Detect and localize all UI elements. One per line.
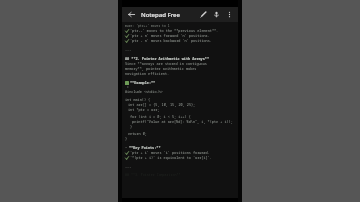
staticText: for (int i = 0; i < 5; i++) { xyxy=(130,114,191,119)
staticText: • xyxy=(125,145,128,150)
staticText: memory**, pointer arithmetic makes xyxy=(125,66,197,71)
staticText: --- xyxy=(125,47,132,52)
staticText: } xyxy=(130,124,133,129)
staticText: 'ptr + i' moves 'i' positions forward. xyxy=(130,150,210,155)
staticText: **Example:** xyxy=(130,80,156,85)
staticText: 'ptr--' moves to the **previous element*… xyxy=(130,28,219,33)
button[interactable]: Back xyxy=(125,8,138,21)
staticText: #include <stdio.h> xyxy=(125,89,163,94)
staticText: int main() { xyxy=(125,97,151,102)
staticText: int arr[] = {5, 10, 15, 20, 25}; xyxy=(128,102,196,107)
staticText: int *ptr = arr; xyxy=(128,107,160,112)
button[interactable]: mure: 'ptr++' moves to 1 xyxy=(122,22,238,198)
button[interactable]: More options xyxy=(223,8,236,21)
staticText: Since **arrays are stored in contiguous xyxy=(125,61,207,66)
staticText: --- xyxy=(125,164,132,169)
staticText: ## **2. Pointer Arithmetic with Arrays** xyxy=(125,56,209,61)
staticText: } xyxy=(125,136,128,141)
staticText: return 0; xyxy=(128,131,147,136)
staticText: printf("Value at arr[%d]: %d\n", i, *(pt… xyxy=(132,119,233,124)
staticText: navigation efficient. xyxy=(125,71,170,76)
staticText: c xyxy=(127,85,129,89)
staticText: '*(ptr + i)' is equivalent to 'arr[i]'. xyxy=(130,155,212,160)
staticText: 'ptr - n' moves backward 'n' positions. xyxy=(130,38,212,43)
staticText: mure: 'ptr++' moves to 1 xyxy=(125,24,170,28)
staticText: Notepad Free xyxy=(141,11,180,19)
staticText: **Key Points:** xyxy=(129,145,161,150)
staticText: 'ptr + n' moves forward 'n' positions. xyxy=(130,33,210,38)
button[interactable]: Edit xyxy=(197,8,210,21)
button[interactable]: Voice input xyxy=(210,8,223,21)
